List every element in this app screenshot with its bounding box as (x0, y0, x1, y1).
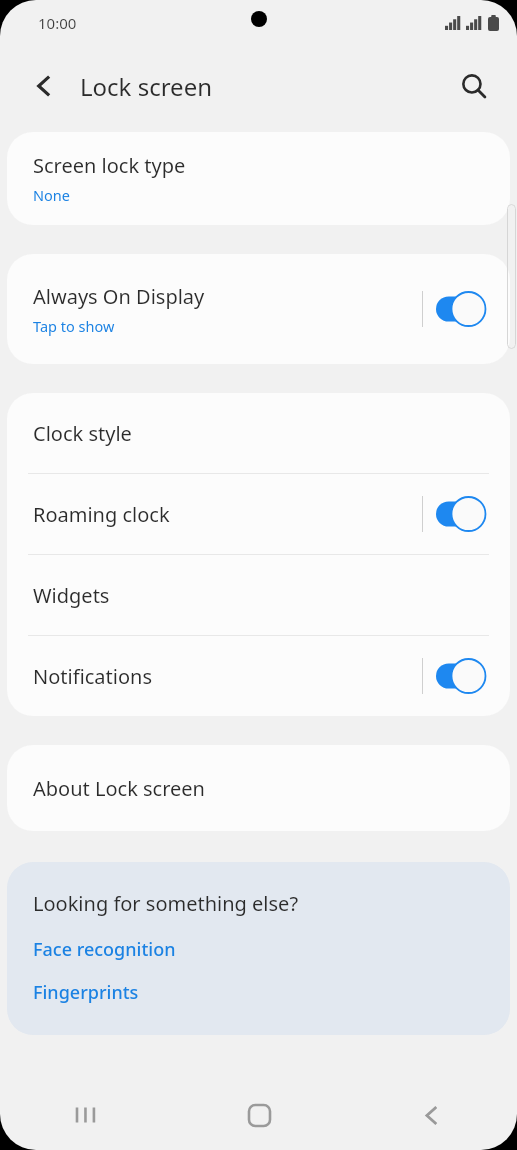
button[interactable]: Search (451, 63, 497, 109)
button[interactable]: Roaming clock toggle (436, 496, 488, 532)
staticText: Clock style (33, 420, 132, 447)
button[interactable]: Recent apps (0, 1080, 173, 1150)
button[interactable]: Roaming clock (7, 474, 510, 554)
button[interactable]: Face recognition (33, 937, 176, 962)
button[interactable]: Notifications (7, 636, 510, 716)
button[interactable]: About Lock screen (7, 745, 510, 831)
staticText: Lock screen (80, 70, 213, 103)
button[interactable]: Always On Display (7, 254, 510, 364)
button[interactable]: Widgets (7, 555, 510, 635)
staticText: Roaming clock (33, 501, 170, 528)
button[interactable]: Screen lock type (7, 132, 510, 225)
button[interactable]: Home (173, 1080, 345, 1150)
staticText: Screen lock type (33, 152, 186, 179)
staticText: Notifications (33, 663, 152, 690)
staticText: Face recognition (33, 937, 176, 962)
staticText: Looking for something else? (33, 890, 299, 917)
staticText: About Lock screen (33, 775, 205, 802)
button[interactable]: Back (345, 1080, 517, 1150)
button[interactable]: Back (22, 64, 66, 108)
button[interactable]: Fingerprints (33, 980, 139, 1005)
staticText: 10:00 (38, 13, 77, 33)
staticText: Fingerprints (33, 980, 139, 1005)
button[interactable]: Always On Display toggle (436, 291, 488, 327)
staticText: Widgets (33, 582, 110, 609)
button[interactable]: Clock style (7, 393, 510, 473)
button[interactable]: Notifications toggle (436, 658, 488, 694)
staticText: None (33, 185, 70, 205)
staticText: Tap to show (33, 316, 115, 336)
staticText: Always On Display (33, 283, 205, 310)
